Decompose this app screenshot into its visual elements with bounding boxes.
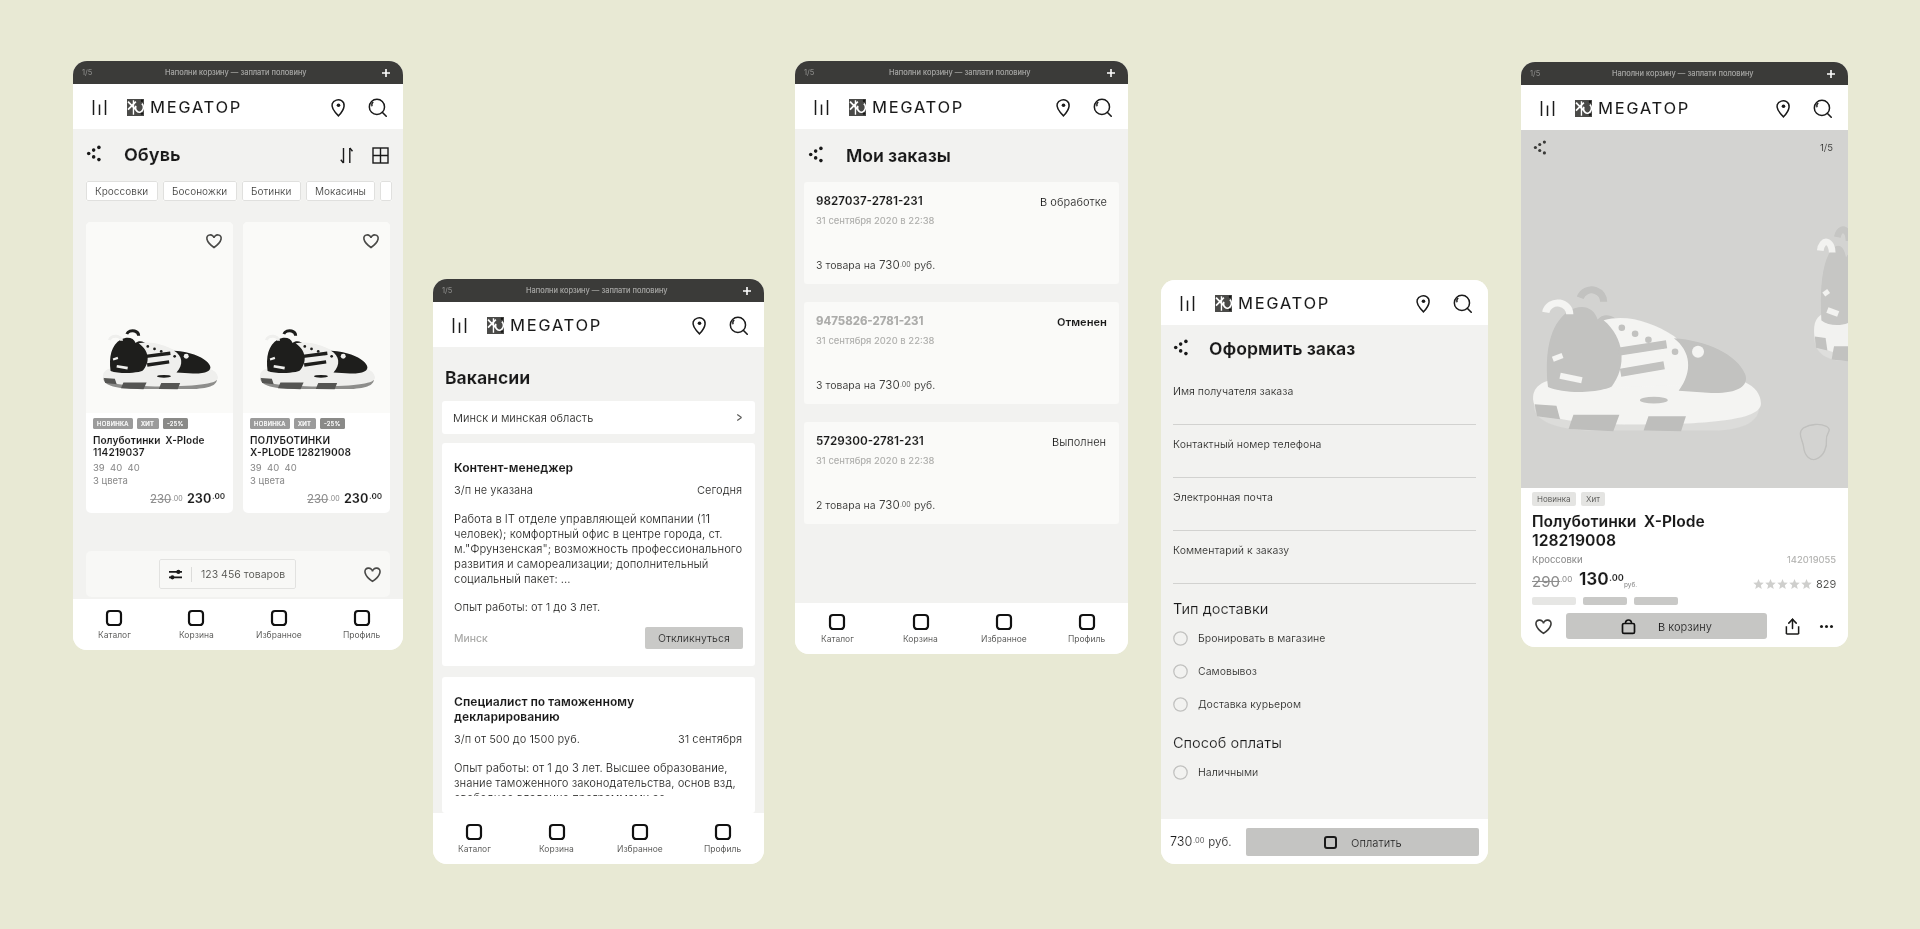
button[interactable]: Menu <box>1176 292 1198 314</box>
button[interactable]: Share <box>1173 339 1193 359</box>
button[interactable]: Каталог <box>795 603 879 654</box>
button[interactable]: Favorites <box>362 564 382 584</box>
button[interactable]: Search <box>364 94 390 120</box>
staticText: Наполни корзину — заплати половину <box>165 68 307 77</box>
button[interactable]: Menu <box>810 96 832 118</box>
staticText: .00 <box>172 494 183 502</box>
button[interactable]: Share <box>1781 615 1803 637</box>
button[interactable]: Корзина <box>155 599 237 650</box>
button[interactable]: Favorite <box>243 222 390 513</box>
button[interactable]: Favorite <box>1532 615 1554 637</box>
staticText: Электронная почта <box>1173 491 1273 504</box>
button[interactable]: Бронировать в магазине <box>1161 622 1488 655</box>
button[interactable]: Профиль <box>320 599 403 650</box>
staticText: руб. <box>1205 835 1232 849</box>
button[interactable]: В корзину <box>1566 613 1767 639</box>
staticText: Новинка <box>1537 494 1571 504</box>
button[interactable]: Ботинки <box>242 181 301 201</box>
button[interactable]: Избранное <box>598 813 681 864</box>
button[interactable]: Имя получателя заказа <box>1173 372 1476 425</box>
staticText: З/п от 500 до 1500 руб. <box>454 732 580 745</box>
staticText: руб. <box>911 379 936 392</box>
staticText: 290 <box>1532 572 1560 590</box>
button[interactable]: Close banner <box>1104 66 1118 80</box>
button[interactable]: Каталог <box>433 813 515 864</box>
button[interactable]: Электронная почта <box>1173 478 1476 531</box>
staticText: 128219008 <box>1532 531 1617 550</box>
button[interactable]: Close banner <box>740 284 754 298</box>
staticText: Специалист по таможенному <box>454 694 635 709</box>
button[interactable]: Favorite <box>362 232 380 250</box>
staticText: 1/5 <box>82 68 93 77</box>
button[interactable]: Search <box>1449 290 1475 316</box>
staticText: 114219037 <box>93 446 145 458</box>
button[interactable]: Специалист по таможенному <box>442 677 755 813</box>
button[interactable]: Favorite <box>205 232 223 250</box>
button[interactable]: Share <box>86 145 106 165</box>
button[interactable]: Shops <box>325 94 351 120</box>
button[interactable]: Корзина <box>879 603 962 654</box>
staticText: руб. <box>1624 581 1638 589</box>
button[interactable]: 123 456 товаров <box>159 559 296 589</box>
staticText: НОВИНКА <box>254 420 286 427</box>
button[interactable]: Share <box>1533 140 1551 158</box>
button[interactable]: Sort <box>336 145 356 165</box>
staticText: 230 <box>187 491 212 506</box>
button[interactable]: Оплатить <box>1246 828 1479 856</box>
button[interactable]: Search <box>1809 95 1835 121</box>
button[interactable]: Контент-менеджер <box>442 443 755 666</box>
button[interactable]: Корзина <box>515 813 598 864</box>
button[interactable]: Избранное <box>962 603 1045 654</box>
button[interactable]: 9475826-2781-231 <box>804 302 1119 404</box>
staticText: Профиль <box>343 630 381 640</box>
staticText: .00 <box>1609 572 1624 583</box>
staticText: .00 <box>1193 836 1205 845</box>
staticText: Оплатить <box>1351 836 1402 849</box>
button[interactable]: Menu <box>1536 97 1558 119</box>
button[interactable]: Favorite <box>86 222 233 513</box>
staticText: Самовывоз <box>1198 665 1258 678</box>
button[interactable]: Доставка курьером <box>1161 688 1488 721</box>
button[interactable]: Профиль <box>1045 603 1128 654</box>
button[interactable]: Close banner <box>1824 67 1838 81</box>
button[interactable]: Наличными <box>1161 756 1488 789</box>
button[interactable]: Откликнуться <box>645 627 743 649</box>
staticText: 1/5 <box>804 68 815 77</box>
button[interactable]: Shops <box>1770 95 1796 121</box>
staticText: Избранное <box>256 630 302 640</box>
button[interactable]: More <box>1815 615 1837 637</box>
button[interactable]: Контактный номер телефона <box>1173 425 1476 478</box>
button[interactable]: Босоножки <box>163 181 237 201</box>
staticText: Наполни корзину — заплати половину <box>889 68 1031 77</box>
button[interactable]: Share <box>808 146 828 166</box>
button[interactable]: Каталог <box>73 599 155 650</box>
button[interactable]: Профиль <box>681 813 764 864</box>
staticText: 9827037-2781-231 <box>816 194 923 208</box>
button[interactable]: Search <box>1089 94 1115 120</box>
button[interactable]: Комментарий к заказу <box>1173 531 1476 584</box>
button[interactable]: 9827037-2781-231 <box>804 182 1119 284</box>
button[interactable]: Самовывоз <box>1161 655 1488 688</box>
button[interactable]: Shops <box>1410 290 1436 316</box>
staticText: Наполни корзину — заплати половину <box>526 286 668 295</box>
staticText: Каталог <box>458 844 491 854</box>
staticText: Минск <box>454 632 488 645</box>
staticText: руб. <box>911 499 936 512</box>
button[interactable]: Menu <box>448 314 470 336</box>
button[interactable]: Menu <box>88 96 110 118</box>
staticText: Каталог <box>821 634 854 644</box>
button[interactable]: Кроссовки <box>86 181 158 201</box>
staticText: Опыт работы: от 1 до 3 лет. <box>454 600 601 613</box>
button[interactable]: Минск и минская область <box>442 401 755 434</box>
button[interactable]: Search <box>725 312 751 338</box>
staticText: Корзина <box>903 634 938 644</box>
button[interactable]: 5729300-2781-231 <box>804 422 1119 524</box>
button[interactable]: Мокасины <box>306 181 375 201</box>
staticText: 829 <box>1816 577 1837 590</box>
button[interactable]: Shops <box>1050 94 1076 120</box>
button[interactable]: Close banner <box>379 66 393 80</box>
button[interactable]: Избранное <box>237 599 320 650</box>
staticText: .00 <box>900 500 911 508</box>
button[interactable]: Shops <box>686 312 712 338</box>
button[interactable]: Grid view <box>370 145 390 165</box>
